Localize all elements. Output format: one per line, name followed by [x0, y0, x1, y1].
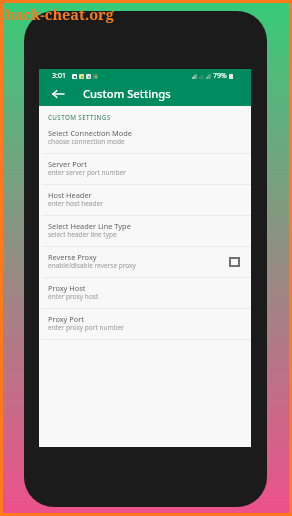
staticText: Custom Settings	[83, 86, 171, 101]
button[interactable]: Proxy Host	[39, 278, 251, 309]
button[interactable]: Select Connection Mode	[39, 123, 251, 154]
button[interactable]: Back	[44, 82, 72, 106]
staticText: ··	[101, 71, 105, 81]
staticText: choose connection mode	[48, 137, 125, 146]
staticText: 79%	[213, 71, 227, 81]
staticText: CUSTOM SETTINGS	[48, 113, 111, 122]
staticText: Reverse Proxy	[48, 252, 97, 262]
staticText: Proxy Host	[48, 283, 86, 293]
staticText: Server Port	[48, 159, 87, 169]
button[interactable]: Host Header	[39, 185, 251, 216]
staticText: enter proxy port number	[48, 323, 124, 332]
staticText: select header line type	[48, 230, 117, 239]
staticText: enter proxy host	[48, 292, 99, 301]
button[interactable]: Select Header Line Type	[39, 216, 251, 247]
staticText: enter host header	[48, 199, 103, 208]
staticText: 3:01	[52, 71, 66, 81]
staticText: hack-cheat.org	[5, 4, 114, 24]
button[interactable]: Server Port	[39, 154, 251, 185]
staticText: Proxy Port	[48, 314, 84, 324]
staticText: enter server port number	[48, 168, 126, 177]
staticText: Host Header	[48, 190, 92, 200]
staticText: Select Header Line Type	[48, 221, 131, 231]
staticText: Select Connection Mode	[48, 128, 132, 138]
button[interactable]: Proxy Port	[39, 309, 251, 340]
staticText: enable/disable reverse proxy	[48, 261, 136, 270]
button[interactable]: Reverse Proxy	[39, 247, 251, 278]
